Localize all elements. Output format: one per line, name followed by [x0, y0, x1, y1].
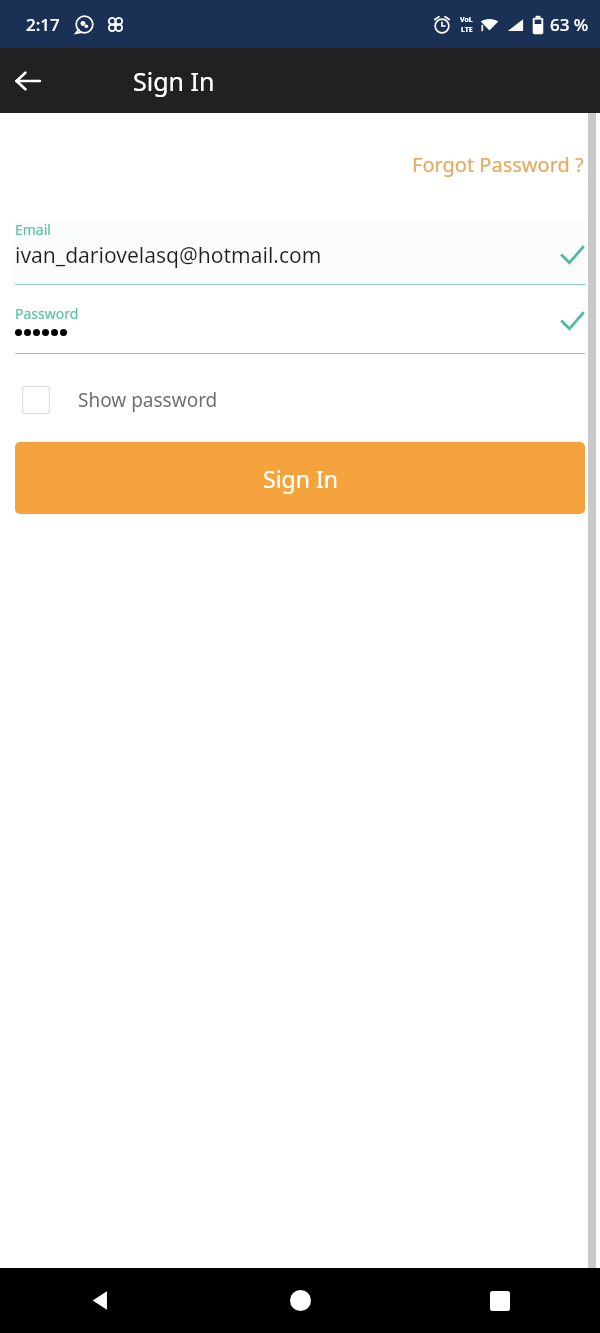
staticText: Sign In: [263, 463, 338, 494]
staticText: Sign In: [133, 64, 215, 98]
button[interactable]: Back: [0, 53, 56, 109]
button[interactable]: Home: [200, 1268, 400, 1333]
button[interactable]: Password: [15, 304, 585, 354]
button[interactable]: Back: [0, 1268, 200, 1333]
staticText: LTE: [461, 25, 473, 35]
button[interactable]: Show password: [22, 384, 230, 416]
staticText: Show password: [78, 387, 218, 413]
staticText: Email: [15, 220, 51, 239]
staticText: Password: [15, 304, 79, 323]
button[interactable]: Email: [15, 220, 585, 285]
staticText: 63 %: [550, 13, 589, 36]
button[interactable]: Sign In: [15, 442, 585, 514]
staticText: 2:17: [26, 13, 60, 36]
staticText: Forgot Password ?: [412, 151, 584, 178]
staticText: ivan_dariovelasq@hotmail.com: [15, 241, 322, 270]
button[interactable]: Forgot Password ?: [410, 147, 586, 182]
staticText: VoL: [460, 15, 473, 25]
button[interactable]: Recent apps: [400, 1268, 600, 1333]
